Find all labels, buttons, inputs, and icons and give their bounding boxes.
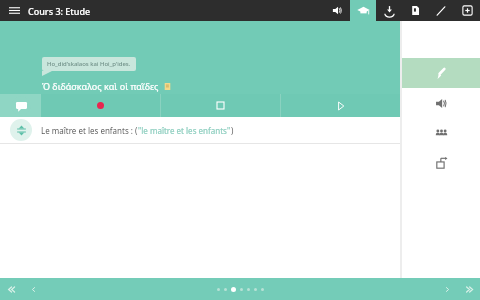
staticText: ) bbox=[231, 125, 234, 136]
button[interactable]: Stop bbox=[161, 94, 280, 117]
staticText: Ho_did'skalaos kai Hoi_p'ides. bbox=[47, 60, 131, 68]
button[interactable]: Save bbox=[376, 0, 402, 21]
button[interactable]: Le maître et les enfants : ( bbox=[0, 117, 400, 143]
button[interactable]: Next bbox=[436, 278, 458, 300]
staticText: Cours 3: Etude bbox=[28, 5, 91, 17]
button[interactable]: Graduation bbox=[350, 0, 376, 21]
button[interactable]: Comments bbox=[0, 94, 41, 117]
button[interactable]: Share bbox=[402, 148, 480, 178]
button[interactable]: Group bbox=[402, 118, 480, 148]
button[interactable]: Highlight bbox=[402, 58, 480, 88]
staticText: Ὁ διδάσκαλος καὶ οἱ παῖδες bbox=[42, 80, 159, 92]
button[interactable]: Audio bbox=[402, 88, 480, 118]
button[interactable]: Add bbox=[454, 0, 480, 21]
button[interactable]: Last bbox=[458, 278, 480, 300]
button[interactable]: Sound bbox=[324, 0, 350, 21]
button[interactable]: Document bbox=[402, 0, 428, 21]
staticText: "le maître et les enfants" bbox=[138, 125, 231, 136]
button[interactable]: Play bbox=[281, 94, 400, 117]
button[interactable]: Draw bbox=[428, 0, 454, 21]
staticText: Le maître et les enfants : ( bbox=[41, 125, 138, 136]
button[interactable]: First bbox=[0, 278, 22, 300]
button[interactable]: Previous bbox=[22, 278, 44, 300]
button[interactable]: Record bbox=[41, 94, 160, 117]
button[interactable]: Menu bbox=[0, 0, 28, 21]
